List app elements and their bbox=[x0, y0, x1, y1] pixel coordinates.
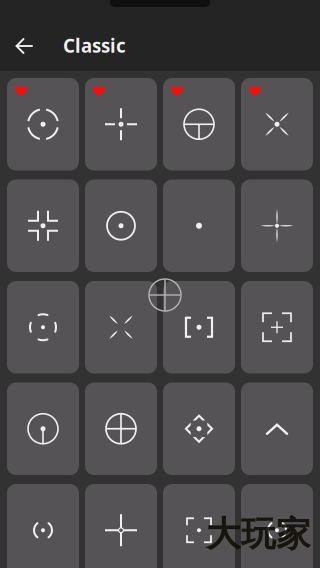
button[interactable]: Crosshair bbox=[241, 484, 313, 568]
button[interactable]: Crosshair bbox=[241, 281, 313, 373]
button[interactable]: Back bbox=[2, 24, 46, 68]
button[interactable]: Crosshair bbox=[7, 484, 79, 568]
button[interactable]: Crosshair bbox=[85, 484, 157, 568]
button[interactable]: Crosshair bbox=[163, 382, 235, 475]
button[interactable]: Crosshair bbox=[163, 78, 235, 170]
button[interactable]: Crosshair bbox=[85, 281, 157, 373]
button[interactable]: Crosshair bbox=[7, 78, 79, 170]
staticText: 大玩家 bbox=[206, 513, 311, 556]
button[interactable]: Crosshair bbox=[163, 281, 235, 373]
button[interactable]: Crosshair bbox=[7, 179, 79, 272]
button[interactable]: Crosshair bbox=[7, 281, 79, 373]
button[interactable]: Crosshair bbox=[85, 382, 157, 475]
button[interactable]: Crosshair bbox=[85, 78, 157, 170]
staticText: Classic bbox=[63, 33, 126, 58]
button[interactable]: Crosshair bbox=[7, 382, 79, 475]
button[interactable]: Crosshair bbox=[241, 78, 313, 170]
button[interactable]: Crosshair bbox=[241, 382, 313, 475]
button[interactable]: Crosshair bbox=[163, 484, 235, 568]
button[interactable]: Crosshair bbox=[85, 179, 157, 272]
button[interactable]: Crosshair bbox=[241, 179, 313, 272]
button[interactable]: Crosshair bbox=[163, 179, 235, 272]
